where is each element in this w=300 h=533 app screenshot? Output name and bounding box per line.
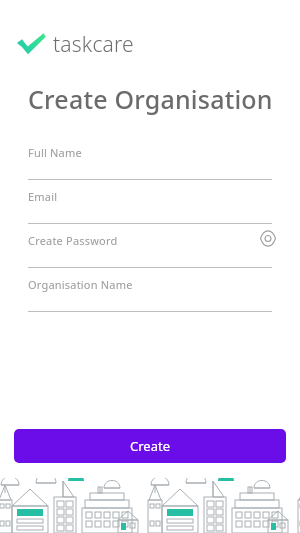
staticText: Create Password (28, 233, 118, 248)
staticText: Email (28, 189, 58, 204)
other: taskcare logo (16, 32, 46, 56)
staticText: Organisation Name (28, 277, 133, 292)
staticText: taskcare (53, 30, 134, 58)
button[interactable]: Full Name (0, 136, 300, 180)
button[interactable]: Create (14, 429, 286, 463)
staticText: Create Organisation (28, 82, 273, 116)
button[interactable]: Show password (258, 228, 278, 248)
button[interactable]: Organisation Name (0, 268, 300, 312)
button[interactable]: Create Password (0, 224, 300, 268)
button[interactable]: Email (0, 180, 300, 224)
staticText: Full Name (28, 145, 82, 160)
staticText: Create (130, 437, 170, 455)
